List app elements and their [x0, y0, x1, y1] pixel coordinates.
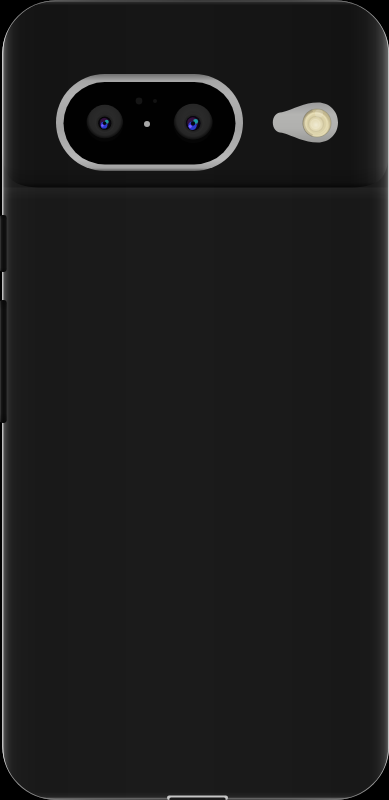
- button[interactable]: Phone back panel: [0, 0, 389, 800]
